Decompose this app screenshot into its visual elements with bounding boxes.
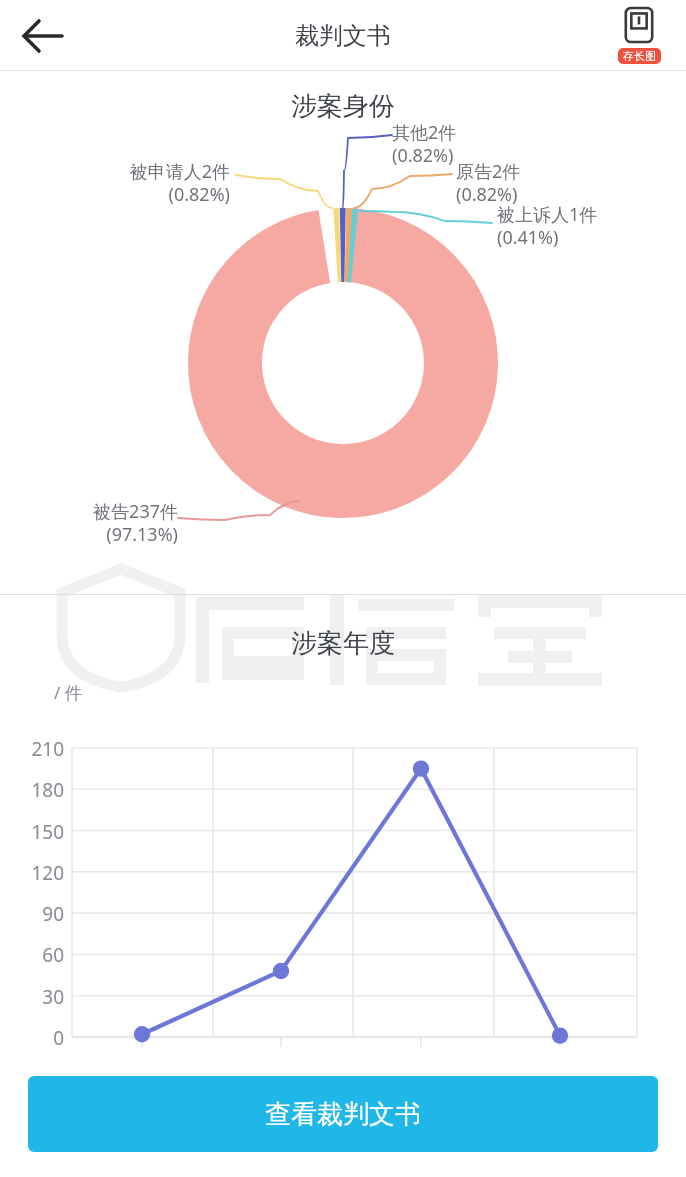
staticText: 0 — [14, 1025, 64, 1051]
button[interactable]: Back — [14, 7, 72, 65]
staticText: 被申请人2件 (0.82%) — [94, 159, 230, 207]
button[interactable]: 查看裁判文书 — [28, 1076, 658, 1152]
staticText: / 件 — [54, 681, 82, 704]
staticText: 210 — [14, 736, 64, 762]
staticText: 裁判文书 — [295, 21, 391, 51]
staticText: 180 — [14, 777, 64, 803]
staticText: 30 — [14, 984, 64, 1010]
staticText: 60 — [14, 942, 64, 968]
staticText: 其他2件 (0.82%) — [392, 120, 457, 168]
button[interactable]: 存长图 — [608, 6, 670, 66]
staticText: 涉案年度 — [291, 627, 395, 660]
staticText: 150 — [14, 819, 64, 845]
staticText: 120 — [14, 860, 64, 886]
staticText: 原告2件 (0.82%) — [456, 159, 521, 207]
staticText: 90 — [14, 901, 64, 927]
staticText: 被上诉人1件 (0.41%) — [497, 202, 598, 250]
staticText: 涉案身份 — [291, 90, 395, 123]
staticText: 被告237件 (97.13%) — [60, 499, 178, 547]
staticText: 查看裁判文书 — [265, 1098, 421, 1131]
staticText: 存长图 — [623, 49, 656, 63]
